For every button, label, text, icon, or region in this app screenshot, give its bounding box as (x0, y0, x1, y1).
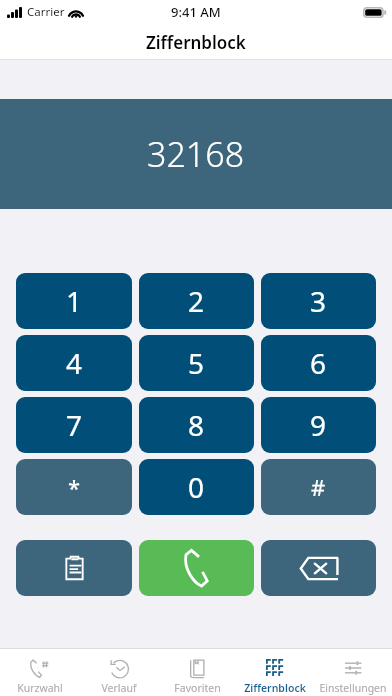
button[interactable]: Paste (16, 540, 132, 596)
button[interactable]: 4 (16, 335, 132, 391)
button[interactable]: Favoriten (158, 650, 236, 695)
staticText: 4 (66, 344, 83, 382)
button[interactable]: Verlauf (79, 650, 158, 695)
staticText: 6 (310, 344, 327, 382)
staticText: # (311, 472, 326, 502)
staticText: Einstellungen (319, 681, 387, 695)
button[interactable]: Ziffernblock (236, 650, 314, 695)
staticText: 0 (188, 468, 205, 506)
staticText: 3 (310, 282, 327, 320)
staticText: 2 (188, 282, 205, 320)
button[interactable]: 3 (261, 273, 376, 329)
staticText: 7 (66, 406, 83, 444)
button[interactable]: # (261, 459, 376, 515)
staticText: Kurzwahl (17, 681, 63, 695)
button[interactable]: Kurzwahl (0, 650, 79, 695)
staticText: 1 (66, 282, 83, 320)
staticText: Favoriten (174, 681, 221, 695)
button[interactable]: 0 (139, 459, 254, 515)
staticText: 8 (188, 406, 205, 444)
button[interactable]: 8 (139, 397, 254, 453)
staticText: 9 (310, 406, 327, 444)
button[interactable]: 2 (139, 273, 254, 329)
staticText: * (68, 472, 81, 502)
button[interactable]: 5 (139, 335, 254, 391)
button[interactable]: 7 (16, 397, 132, 453)
button[interactable]: 9 (261, 397, 376, 453)
button[interactable]: Backspace (261, 540, 376, 596)
staticText: 32168 (147, 131, 245, 177)
button[interactable]: 1 (16, 273, 132, 329)
staticText: Ziffernblock (244, 681, 306, 695)
button[interactable]: Einstellungen (314, 650, 392, 695)
staticText: Verlauf (101, 681, 137, 695)
button[interactable]: 6 (261, 335, 376, 391)
staticText: Carrier (27, 4, 65, 20)
button[interactable]: * (16, 459, 132, 515)
staticText: Ziffernblock (146, 31, 246, 54)
staticText: 9:41 AM (171, 3, 221, 21)
staticText: 5 (188, 344, 205, 382)
button[interactable]: Call (139, 540, 254, 596)
